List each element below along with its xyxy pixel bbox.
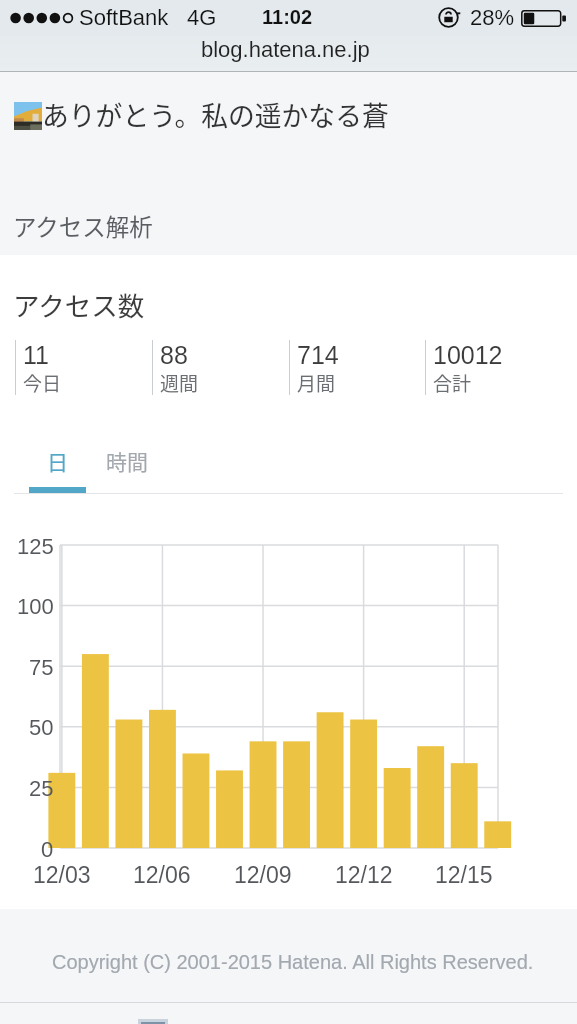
button[interactable]: 88 bbox=[152, 340, 288, 395]
staticText: 0 bbox=[41, 837, 54, 862]
staticText: blog.hatena.ne.jp bbox=[201, 37, 370, 62]
staticText: 時間 bbox=[106, 446, 148, 476]
staticText: ありがとう。私の遥かなる蒼 bbox=[42, 95, 389, 134]
staticText: 11:02 bbox=[262, 6, 313, 28]
staticText: 12/06 bbox=[133, 862, 191, 888]
staticText: 100 bbox=[17, 594, 54, 619]
staticText: 月間 bbox=[297, 369, 336, 397]
staticText: 12/12 bbox=[335, 862, 393, 888]
staticText: 週間 bbox=[160, 369, 199, 397]
button[interactable]: blog.hatena.ne.jp bbox=[0, 36, 577, 72]
staticText: アクセス解析 bbox=[13, 209, 153, 243]
button[interactable]: 714 bbox=[289, 340, 425, 395]
staticText: 10012 bbox=[433, 341, 503, 369]
staticText: 日 bbox=[47, 446, 68, 476]
staticText: 11 bbox=[23, 341, 49, 369]
button[interactable]: 10012 bbox=[425, 340, 561, 395]
staticText: 75 bbox=[29, 655, 54, 680]
button[interactable]: 日 bbox=[29, 437, 86, 484]
staticText: 今日 bbox=[23, 369, 62, 397]
button[interactable]: 11 bbox=[15, 340, 151, 395]
staticText: 合計 bbox=[433, 369, 472, 397]
staticText: SoftBank bbox=[79, 5, 169, 30]
staticText: 4G bbox=[187, 5, 217, 30]
staticText: アクセス数 bbox=[13, 285, 145, 323]
staticText: Copyright (C) 2001-2015 Hatena. All Righ… bbox=[52, 951, 534, 973]
staticText: 12/09 bbox=[234, 862, 292, 888]
button[interactable]: ありがとう。私の遥かなる蒼 bbox=[0, 72, 577, 190]
staticText: 50 bbox=[29, 715, 54, 740]
staticText: 12/15 bbox=[435, 862, 493, 888]
staticText: 714 bbox=[297, 341, 339, 369]
staticText: 25 bbox=[29, 776, 54, 801]
staticText: 125 bbox=[17, 534, 54, 559]
staticText: 88 bbox=[160, 341, 188, 369]
button[interactable]: 時間 bbox=[96, 437, 158, 484]
staticText: 28% bbox=[470, 5, 515, 30]
staticText: 12/03 bbox=[33, 862, 91, 888]
